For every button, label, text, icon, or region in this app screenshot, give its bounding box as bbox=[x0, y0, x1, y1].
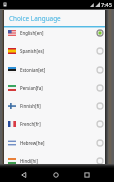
staticText: Choice Language bbox=[9, 14, 61, 23]
button[interactable]: Recents bbox=[80, 168, 93, 181]
button[interactable]: Hindi[hi] bbox=[4, 152, 105, 164]
staticText: Finnish[fi] bbox=[20, 103, 41, 109]
button[interactable]: Hebrew[he] bbox=[4, 134, 105, 152]
button[interactable]: Home bbox=[49, 168, 62, 181]
button[interactable]: Back bbox=[17, 168, 30, 181]
button[interactable]: Spanish[es] bbox=[4, 42, 105, 60]
button[interactable]: Finnish[fi] bbox=[4, 97, 105, 115]
staticText: Spanish[es] bbox=[20, 48, 45, 54]
staticText: Hebrew[he] bbox=[20, 140, 45, 146]
staticText: Hindi[hi] bbox=[20, 158, 38, 164]
staticText: French[fr] bbox=[20, 121, 41, 127]
button[interactable]: Estonian[et] bbox=[4, 61, 105, 79]
staticText: 7:45 bbox=[101, 1, 112, 8]
button[interactable]: French[fr] bbox=[4, 115, 105, 133]
staticText: Estonian[et] bbox=[20, 67, 46, 73]
staticText: Persian[fa] bbox=[20, 85, 43, 91]
button[interactable]: Persian[fa] bbox=[4, 79, 105, 97]
staticText: English[en] bbox=[20, 30, 44, 36]
button[interactable]: English[en] bbox=[4, 24, 105, 42]
